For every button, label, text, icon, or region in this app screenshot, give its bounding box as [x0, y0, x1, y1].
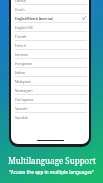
staticText: Danish: [15, 0, 27, 3]
staticText: Finnish: [15, 34, 27, 39]
button[interactable]: Spanish: [11, 104, 89, 112]
other: Selected: [82, 16, 86, 20]
button[interactable]: English(North America): [11, 14, 89, 22]
staticText: English(North America): [15, 16, 54, 21]
button[interactable]: Portuguese: [11, 95, 89, 103]
staticText: "Access the app in multiple languages": [9, 169, 94, 175]
staticText: English(UK): [15, 25, 34, 30]
staticText: Portuguese: [15, 97, 34, 102]
staticText: Multilanguage Support: [8, 155, 96, 166]
button[interactable]: Hungarian: [11, 59, 89, 67]
button[interactable]: Malaysian: [11, 77, 89, 85]
button[interactable]: German: [11, 50, 89, 58]
staticText: Swedish: [15, 115, 29, 120]
button[interactable]: Norwegian: [11, 86, 89, 94]
button[interactable]: Swedish: [11, 113, 89, 121]
button[interactable]: English(UK): [11, 23, 89, 31]
button[interactable]: Finnish: [11, 32, 89, 40]
button[interactable]: French: [11, 41, 89, 49]
staticText: French: [15, 43, 26, 48]
staticText: Dutch: [15, 7, 25, 12]
staticText: Italian: [15, 70, 26, 75]
staticText: Hungarian: [15, 61, 32, 66]
button[interactable]: Danish: [11, 0, 89, 4]
staticText: Malaysian: [15, 79, 31, 84]
button[interactable]: Dutch: [11, 5, 89, 13]
staticText: Spanish: [15, 106, 28, 111]
staticText: German: [15, 52, 28, 57]
staticText: Norwegian: [15, 88, 33, 93]
button[interactable]: Italian: [11, 68, 89, 76]
